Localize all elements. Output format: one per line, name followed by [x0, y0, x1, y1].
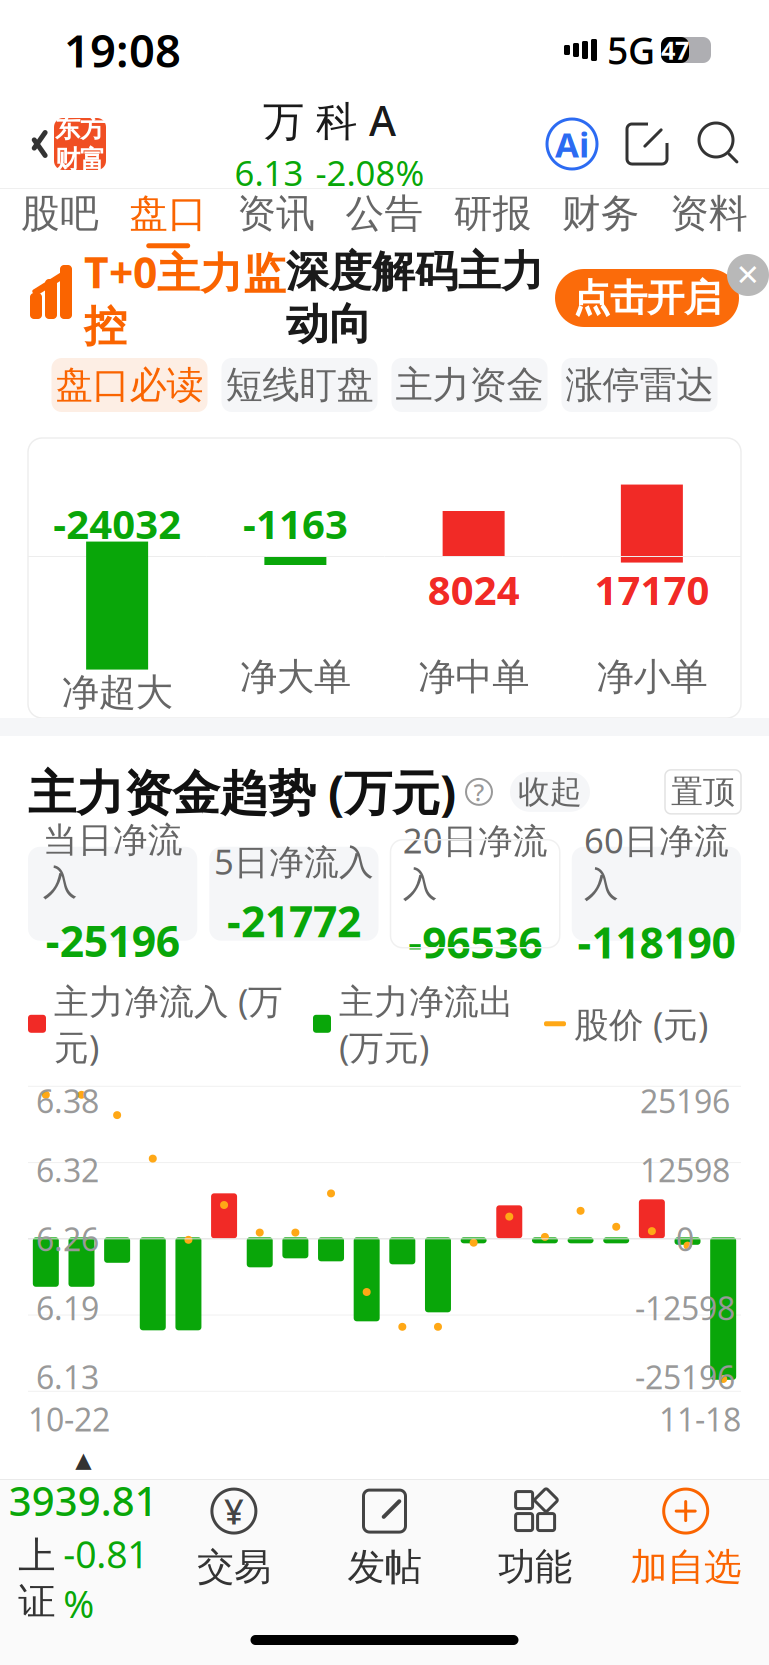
staticText: 上证: [18, 1533, 55, 1624]
staticText: -12598: [635, 1287, 735, 1329]
staticText: 17170: [594, 563, 709, 616]
button[interactable]: 收起: [510, 772, 590, 812]
staticText: 25196: [640, 1080, 730, 1122]
staticText: 万 科 A: [263, 92, 396, 147]
staticText: 12598: [640, 1149, 730, 1191]
staticText: 19:08: [64, 20, 181, 80]
staticText: 财富: [55, 144, 105, 175]
button[interactable]: 盘口必读: [51, 358, 207, 412]
staticText: 主力净流出 (万元): [339, 978, 514, 1070]
staticText: -21772: [227, 892, 361, 949]
staticText: Ai: [555, 121, 589, 167]
button[interactable]: 公告: [330, 188, 438, 250]
staticText: 置顶: [671, 772, 735, 811]
button[interactable]: 置顶: [665, 770, 741, 814]
staticText: 公告: [345, 190, 423, 237]
staticText: 11-18: [659, 1398, 741, 1440]
staticText: 点击开启: [573, 275, 721, 321]
staticText: 盘口: [129, 190, 207, 237]
button[interactable]: 5日净流入: [209, 847, 378, 941]
staticText: 10-22: [28, 1398, 110, 1440]
button[interactable]: 加自选: [610, 1480, 761, 1596]
button[interactable]: 20日净流入: [390, 840, 560, 948]
button[interactable]: 资讯: [222, 188, 330, 250]
staticText: 股吧: [21, 190, 99, 237]
button[interactable]: 发帖: [309, 1480, 460, 1596]
staticText: -96536: [408, 914, 542, 970]
staticText: 主力资金趋势 (万元): [28, 760, 456, 824]
staticText: -25196: [635, 1356, 735, 1398]
button[interactable]: 资料: [655, 188, 763, 250]
staticText: T+0主力监控: [84, 243, 286, 353]
staticText: 资料: [670, 190, 748, 237]
button[interactable]: 返回: [0, 100, 114, 188]
staticText: ?: [473, 776, 484, 808]
button[interactable]: 盘口: [114, 188, 222, 250]
staticText: 东方: [55, 113, 105, 144]
button[interactable]: 财务: [547, 188, 655, 250]
staticText: 6.19: [36, 1287, 99, 1329]
staticText: 5日净流入: [214, 838, 374, 884]
staticText: 股价 (元): [574, 1001, 708, 1047]
staticText: 财务: [562, 190, 640, 237]
button[interactable]: 当日净流入: [28, 847, 197, 941]
staticText: -118190: [577, 914, 735, 970]
staticText: 净超大: [62, 670, 173, 715]
button[interactable]: 研报: [439, 188, 547, 250]
staticText: 5G: [607, 25, 655, 75]
staticText: 加自选: [630, 1544, 741, 1590]
button[interactable]: 搜索: [695, 120, 743, 168]
button[interactable]: 说明: [462, 775, 496, 809]
staticText: 主力资金: [395, 362, 543, 408]
staticText: 交易: [197, 1544, 271, 1590]
staticText: 盘口必读: [55, 362, 203, 408]
button[interactable]: 涨停雷达: [561, 358, 717, 412]
staticText: 6.13: [36, 1356, 99, 1398]
staticText: 6.26: [36, 1218, 99, 1260]
staticText: 6.13: [234, 149, 303, 195]
staticText: 短线盯盘: [225, 362, 373, 408]
staticText: 功能: [498, 1544, 572, 1590]
staticText: ¥: [224, 1488, 244, 1534]
staticText: 收起: [518, 772, 582, 811]
button[interactable]: 60日净流入: [572, 847, 741, 941]
staticText: -24032: [53, 497, 181, 550]
button[interactable]: 股吧: [6, 188, 114, 250]
button[interactable]: ¥: [159, 1480, 309, 1596]
staticText: 0: [676, 1218, 694, 1260]
staticText: 净中单: [418, 654, 529, 700]
staticText: -1163: [243, 497, 348, 550]
staticText: 净大单: [240, 654, 351, 700]
button[interactable]: AI 助手: [545, 117, 599, 171]
staticText: -0.81%: [63, 1529, 148, 1628]
staticText: 6.32: [36, 1149, 99, 1191]
staticText: 发帖: [347, 1544, 421, 1590]
staticText: 深度解码主力动向: [286, 246, 544, 350]
staticText: -25196: [46, 912, 180, 969]
button[interactable]: 功能: [460, 1480, 610, 1596]
button[interactable]: 关闭广告: [727, 254, 769, 296]
button[interactable]: 点击开启: [555, 269, 739, 327]
staticText: 8024: [428, 563, 520, 616]
staticText: 主力净流入 (万元): [54, 978, 283, 1070]
staticText: 6.38: [36, 1080, 99, 1122]
button[interactable]: 分享: [623, 120, 671, 168]
staticText: ▲: [75, 1448, 91, 1472]
staticText: 3939.81: [9, 1474, 158, 1527]
button[interactable]: 主力资金: [391, 358, 547, 412]
button[interactable]: ▲: [8, 1480, 159, 1596]
staticText: ✕: [735, 258, 760, 292]
staticText: 20日净流入: [403, 817, 548, 906]
staticText: 净小单: [596, 654, 707, 700]
staticText: 60日净流入: [584, 817, 729, 906]
staticText: 研报: [454, 190, 532, 237]
staticText: -2.08%: [315, 149, 424, 195]
button[interactable]: 短线盯盘: [221, 358, 377, 412]
staticText: 涨停雷达: [565, 362, 713, 408]
staticText: 资讯: [237, 190, 315, 237]
staticText: 47: [661, 33, 689, 67]
staticText: 当日净流入: [43, 819, 183, 904]
